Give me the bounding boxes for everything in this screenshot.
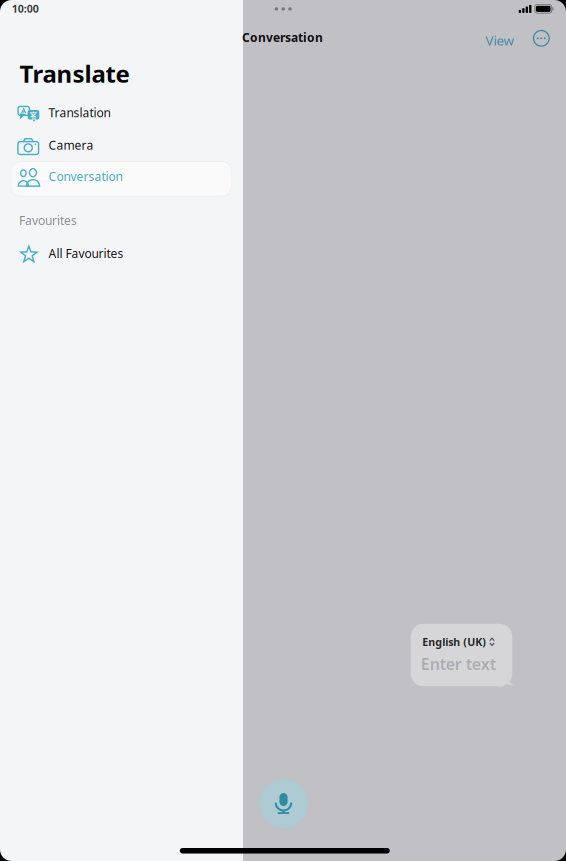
staticText: Enter text [421, 653, 496, 674]
button[interactable]: More options [530, 27, 553, 50]
staticText: English (UK) [422, 635, 486, 649]
staticText: Favourites [19, 212, 77, 228]
staticText: Translate [19, 57, 129, 89]
staticText: Camera [48, 137, 93, 153]
staticText: Translation [48, 105, 110, 120]
button[interactable]: Start conversation recording [259, 779, 308, 828]
button[interactable]: Conversation [12, 163, 231, 195]
button[interactable]: Translation [12, 98, 231, 130]
staticText: All Favourites [48, 245, 123, 261]
staticText: 10:00 [12, 2, 39, 16]
staticText: Conversation [242, 29, 323, 45]
button[interactable]: Camera [12, 130, 231, 163]
staticText: View [485, 31, 513, 49]
button[interactable]: View [481, 27, 517, 53]
button[interactable]: All Favourites [12, 238, 231, 271]
staticText: Conversation [48, 168, 122, 184]
